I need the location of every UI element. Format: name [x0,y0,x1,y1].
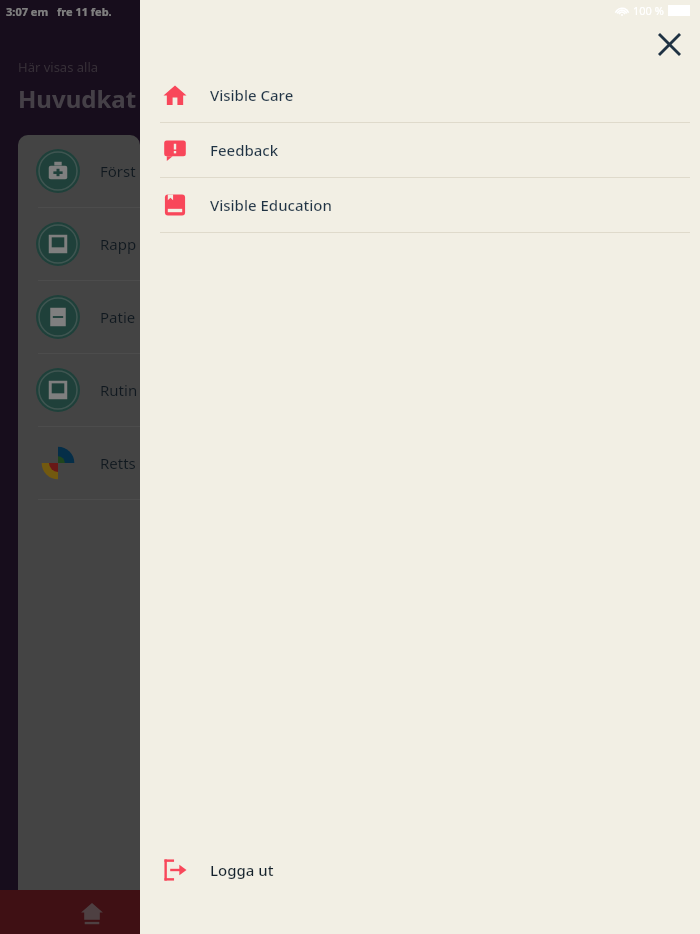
staticText: Huvudkategorier [18,82,140,115]
staticText: 100 % [633,3,664,18]
staticText: Första hjälpen [100,161,140,181]
staticText: Patientjournal [100,307,140,327]
staticText: Feedback [210,140,279,160]
staticText: 3:07 em [6,4,49,19]
button[interactable]: Retts [18,427,140,499]
button[interactable]: Feedback [140,123,700,177]
staticText: Visible Care [210,85,294,105]
button[interactable]: Rapportering [18,208,140,280]
button[interactable]: Visible Education [140,178,700,232]
staticText: Här visas alla [18,58,99,76]
button[interactable]: Rutiner [18,354,140,426]
staticText: Rapportering [100,234,140,254]
staticText: fre 11 feb. [57,4,112,19]
staticText: Logga ut [210,860,274,880]
button[interactable]: Logga ut [140,834,700,906]
button[interactable]: Visible Care [140,68,700,122]
staticText: Visible Education [210,195,332,215]
staticText: Retts [100,453,136,473]
button[interactable]: Första hjälpen [18,135,140,207]
button[interactable]: Patientjournal [18,281,140,353]
staticText: Rutiner [100,380,140,400]
button[interactable]: Close [648,23,690,65]
